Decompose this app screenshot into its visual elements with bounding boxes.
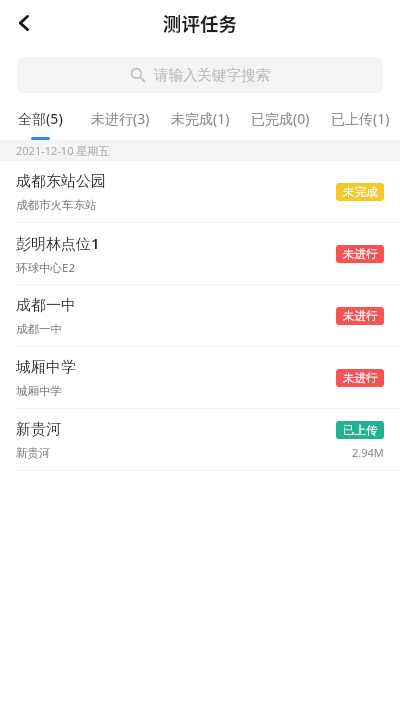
button[interactable]: 未完成(1): [160, 103, 240, 140]
staticText: 未进行(3): [91, 109, 150, 128]
button[interactable]: Back: [1, 0, 46, 46]
staticText: 环球中心E2: [16, 260, 75, 276]
staticText: 未进行: [343, 309, 378, 323]
button[interactable]: 彭明林点位1: [0, 223, 400, 285]
button[interactable]: 城厢中学: [0, 347, 400, 409]
button[interactable]: 请输入关键字搜索: [17, 57, 383, 93]
button[interactable]: 新贵河: [0, 409, 400, 471]
staticText: 成都东站公园: [16, 172, 106, 191]
staticText: 全部(5): [18, 109, 63, 128]
staticText: 未进行: [343, 371, 378, 385]
button[interactable]: 已上传(1): [320, 103, 400, 140]
staticText: 请输入关键字搜索: [154, 66, 270, 84]
staticText: 测评任务: [163, 10, 238, 37]
staticText: 未完成: [343, 185, 378, 199]
staticText: 成都一中: [16, 322, 62, 336]
staticText: 城厢中学: [16, 384, 62, 398]
staticText: 城厢中学: [16, 358, 76, 377]
button[interactable]: 已完成(0): [240, 103, 320, 140]
button[interactable]: 成都一中: [0, 285, 400, 347]
staticText: 未进行: [343, 247, 378, 261]
staticText: 已上传(1): [331, 109, 390, 128]
staticText: 成都一中: [16, 296, 76, 315]
staticText: 未完成(1): [171, 109, 230, 128]
staticText: 已完成(0): [251, 109, 310, 128]
staticText: 新贵河: [16, 446, 51, 460]
staticText: 已上传: [343, 423, 378, 437]
staticText: 彭明林点位1: [16, 233, 100, 253]
staticText: 成都市火车东站: [16, 198, 97, 212]
staticText: 2.94M: [352, 445, 384, 460]
staticText: 新贵河: [16, 420, 61, 439]
button[interactable]: 成都东站公园: [0, 161, 400, 223]
button[interactable]: 未进行(3): [80, 103, 160, 140]
button[interactable]: 全部(5): [0, 103, 80, 140]
staticText: 2021-12-10 星期五: [16, 143, 110, 158]
